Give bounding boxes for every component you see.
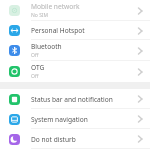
staticText: Off	[31, 73, 39, 80]
staticText: Status bar and notification	[31, 95, 113, 104]
button[interactable]: OTG	[0, 61, 150, 82]
button[interactable]: Do not disturb	[0, 129, 150, 149]
staticText: Do not disturb	[31, 135, 76, 144]
button[interactable]: Status bar and notification	[0, 89, 150, 109]
button[interactable]: Bluetooth	[0, 40, 150, 61]
button[interactable]: Personal Hotspot	[0, 21, 150, 40]
staticText: Off	[31, 52, 39, 59]
staticText: OTG	[31, 63, 45, 72]
button[interactable]: Mobile network	[0, 0, 150, 21]
staticText: No SIM	[31, 12, 49, 19]
button[interactable]: System navigation	[0, 109, 150, 129]
staticText: System navigation	[31, 115, 88, 124]
staticText: Bluetooth	[31, 42, 62, 51]
staticText: Mobile network	[31, 2, 80, 11]
staticText: Personal Hotspot	[31, 26, 85, 35]
